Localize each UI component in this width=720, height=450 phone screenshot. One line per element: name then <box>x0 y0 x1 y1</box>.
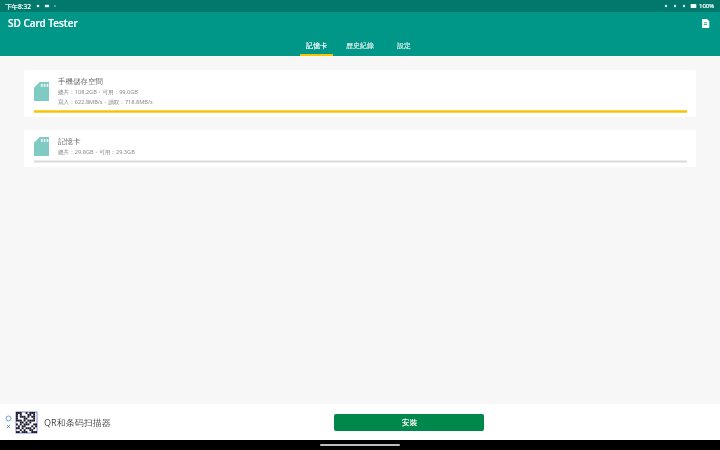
staticText: 記憶卡 <box>58 137 81 146</box>
staticText: 安裝 <box>402 418 417 427</box>
staticText: 下午8:32 <box>5 2 31 11</box>
staticText: SD Card Tester <box>8 16 78 30</box>
staticText: 歷史紀錄 <box>346 41 374 50</box>
staticText: 寫入：622.8MB/s・讀取：718.8MB/s <box>58 98 153 106</box>
button[interactable]: 手機儲存空間 <box>24 70 696 117</box>
button[interactable]: Report <box>696 14 714 32</box>
button[interactable]: 歷史紀錄 <box>338 34 382 56</box>
button[interactable]: 設定 <box>382 34 426 56</box>
staticText: 記憶卡 <box>306 41 327 50</box>
staticText: 100% <box>699 2 715 10</box>
staticText: QR和条码扫描器 <box>44 416 111 428</box>
button[interactable]: 安裝 <box>334 414 484 431</box>
staticText: 總共：108.2GB・可用：99.0GB <box>58 88 138 96</box>
staticText: 手機儲存空間 <box>58 77 103 86</box>
staticText: 設定 <box>397 41 411 50</box>
button[interactable]: 記憶卡 <box>24 130 696 167</box>
staticText: 總共：29.8GB・可用：29.3GB <box>58 148 135 156</box>
button[interactable]: 記憶卡 <box>294 34 338 56</box>
